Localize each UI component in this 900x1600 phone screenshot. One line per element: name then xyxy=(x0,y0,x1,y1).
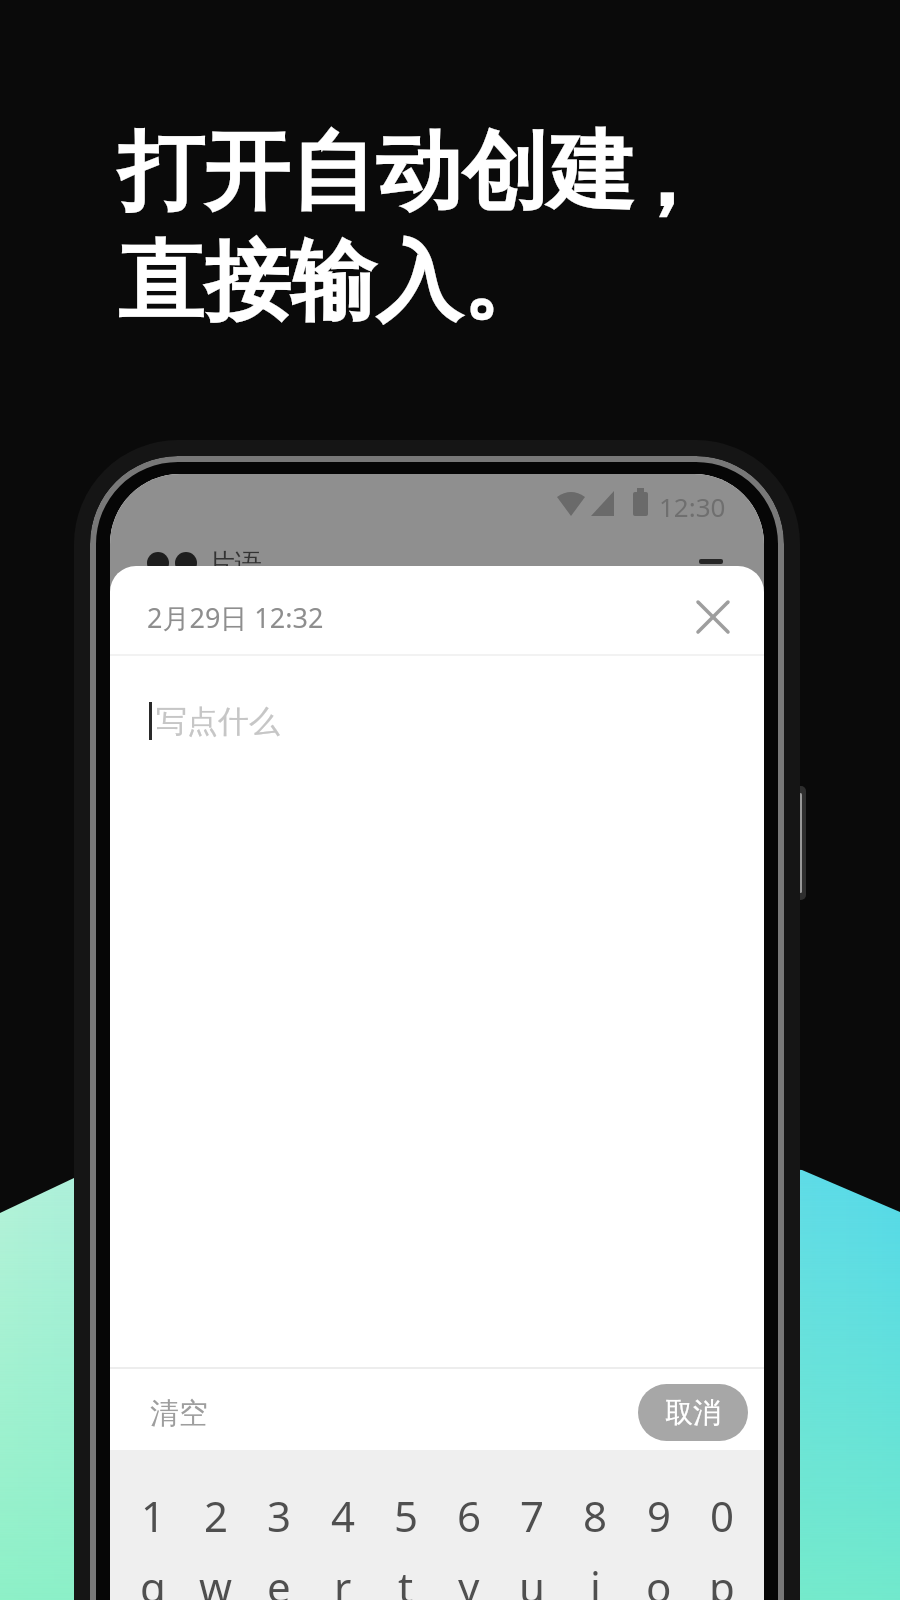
staticText: 1 xyxy=(141,1487,166,1543)
button[interactable]: 7 xyxy=(502,1487,562,1543)
staticText: r xyxy=(334,1558,352,1600)
button[interactable]: 清空 xyxy=(140,1386,260,1441)
button[interactable]: r xyxy=(313,1558,373,1600)
button[interactable]: 1 xyxy=(123,1487,183,1543)
button[interactable]: 4 xyxy=(313,1487,373,1543)
staticText: i xyxy=(590,1558,601,1600)
staticText: 7 xyxy=(520,1487,545,1543)
staticText: 写点什么 xyxy=(156,702,280,741)
staticText: 2 xyxy=(204,1487,229,1543)
staticText: u xyxy=(519,1558,545,1600)
staticText: e xyxy=(267,1558,291,1600)
staticText: 5 xyxy=(394,1487,419,1543)
staticText: 打开自动创建 xyxy=(118,118,634,226)
staticText: 12:30 xyxy=(659,489,726,524)
staticText: o xyxy=(646,1558,672,1600)
staticText: p xyxy=(709,1558,735,1600)
staticText: ， xyxy=(622,123,708,231)
button[interactable]: w xyxy=(186,1558,246,1600)
staticText: q xyxy=(140,1558,166,1600)
button[interactable]: e xyxy=(249,1558,309,1600)
staticText: 8 xyxy=(583,1487,608,1543)
button[interactable]: i xyxy=(565,1558,625,1600)
staticText: y xyxy=(458,1558,480,1600)
staticText: 0 xyxy=(710,1487,735,1543)
staticText: t xyxy=(398,1558,414,1600)
staticText: 3 xyxy=(267,1487,292,1543)
staticText: 片语 xyxy=(208,547,262,581)
button[interactable]: q xyxy=(123,1558,183,1600)
button[interactable]: o xyxy=(629,1558,689,1600)
button[interactable]: u xyxy=(502,1558,562,1600)
button[interactable] xyxy=(683,587,743,647)
staticText: 直接输入。 xyxy=(118,228,548,336)
button[interactable]: 6 xyxy=(439,1487,499,1543)
staticText: 2月29日 12:32 xyxy=(147,599,324,636)
button[interactable]: t xyxy=(376,1558,436,1600)
staticText: 9 xyxy=(647,1487,672,1543)
button[interactable]: 0 xyxy=(692,1487,752,1543)
button[interactable]: 5 xyxy=(376,1487,436,1543)
button[interactable]: 8 xyxy=(565,1487,625,1543)
button[interactable]: y xyxy=(439,1558,499,1600)
button[interactable]: 3 xyxy=(249,1487,309,1543)
button[interactable]: p xyxy=(692,1558,752,1600)
staticText: w xyxy=(199,1558,233,1600)
button[interactable]: 取消 xyxy=(638,1384,748,1441)
staticText: 6 xyxy=(457,1487,482,1543)
staticText: 清空 xyxy=(150,1395,208,1432)
staticText: 取消 xyxy=(665,1395,721,1430)
button[interactable]: 2 xyxy=(186,1487,246,1543)
staticText: 4 xyxy=(331,1487,356,1543)
button[interactable]: 9 xyxy=(629,1487,689,1543)
